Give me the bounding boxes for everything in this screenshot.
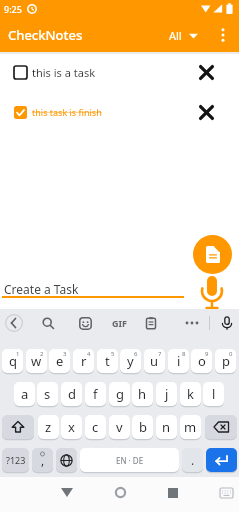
button[interactable] [56,448,77,472]
button[interactable]: h [132,382,153,406]
staticText: 1 [16,350,20,358]
staticText: this is a task [32,65,96,80]
staticText: 6 [134,350,138,358]
button[interactable]: ?123 [2,448,29,472]
button[interactable] [216,312,238,334]
button[interactable] [54,480,79,505]
button[interactable]: q [2,349,23,373]
button[interactable]: n [156,415,177,439]
staticText: All [169,28,182,43]
button[interactable]: e [49,349,70,373]
staticText: 2 [40,350,44,358]
staticText: s [44,385,51,403]
button[interactable]: u [144,349,165,373]
staticText: b [139,418,147,436]
button[interactable]: this is a task [0,61,239,83]
button[interactable]: v [109,415,130,439]
button[interactable] [193,235,232,274]
button[interactable] [195,61,217,83]
button[interactable] [205,415,237,439]
button[interactable]: a [14,382,35,406]
staticText: i [177,352,181,370]
button[interactable] [2,415,34,439]
button[interactable]: o [191,349,212,373]
staticText: x [68,418,75,436]
staticText: j [165,385,169,403]
staticText: 0 [229,350,233,358]
staticText: k [187,385,194,403]
button[interactable]: w [26,349,47,373]
staticText: 7 [158,350,162,358]
staticText: t [105,352,110,370]
staticText: this task is finish [32,106,102,118]
button[interactable]: i [168,349,189,373]
staticText: 8 [182,350,186,358]
staticText: w [31,352,42,370]
button[interactable] [197,273,227,311]
button[interactable]: r [73,349,94,373]
staticText: GIF [112,317,127,329]
staticText: CheckNotes [8,26,83,44]
staticText: r [81,352,87,370]
staticText: 9 [205,350,209,358]
button[interactable]: EN · DE [80,448,179,472]
button[interactable]: m [180,415,201,439]
staticText: a [21,385,29,403]
staticText: p [222,352,230,370]
staticText: f [93,385,98,403]
button[interactable]: c [85,415,106,439]
button[interactable] [160,480,185,505]
staticText: ?123 [6,454,26,466]
button[interactable]: g [109,382,130,406]
button[interactable]: this task is finish [0,101,239,123]
button[interactable]: , [32,448,53,472]
staticText: 4 [87,350,91,358]
staticText: c [92,418,99,436]
button[interactable]: d [61,382,82,406]
staticText: 9:25 [4,3,22,15]
button[interactable] [195,101,217,123]
button[interactable] [140,312,162,334]
button[interactable] [214,480,239,505]
staticText: g [116,385,124,403]
button[interactable] [212,24,234,46]
staticText: q [9,352,17,370]
staticText: . [191,452,195,468]
staticText: l [212,385,216,403]
button[interactable] [206,448,237,472]
button[interactable]: j [156,382,177,406]
button[interactable]: k [180,382,201,406]
staticText: EN · DE [116,455,144,466]
button[interactable] [74,312,96,334]
button[interactable]: x [61,415,82,439]
staticText: , [41,452,45,468]
button[interactable]: s [37,382,58,406]
staticText: n [162,418,171,436]
staticText: d [68,385,76,403]
button[interactable]: t [97,349,118,373]
button[interactable] [181,312,203,334]
button[interactable]: All [169,22,198,49]
staticText: 5 [111,350,115,358]
staticText: z [45,418,52,436]
button[interactable]: z [38,415,59,439]
button[interactable]: p [215,349,236,373]
staticText: 3 [63,350,67,358]
button[interactable] [37,312,59,334]
staticText: m [184,418,197,436]
button[interactable]: GIF [106,312,132,334]
staticText: Create a Task [4,281,79,297]
staticText: u [150,352,159,370]
button[interactable]: l [203,382,224,406]
staticText: y [127,352,134,370]
button[interactable]: b [132,415,153,439]
staticText: o [198,352,206,370]
button[interactable]: y [120,349,141,373]
button[interactable] [108,480,133,505]
button[interactable]: . [182,448,203,472]
staticText: v [116,418,123,436]
staticText: h [138,385,147,403]
button[interactable] [3,312,25,334]
button[interactable]: f [85,382,106,406]
